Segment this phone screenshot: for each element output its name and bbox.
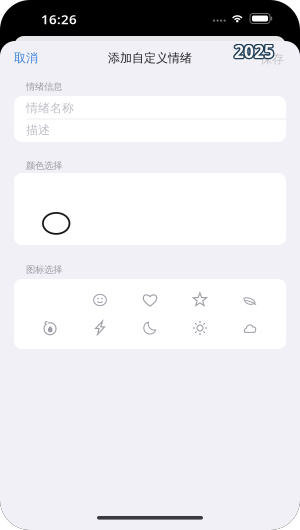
staticText: 情绪名称 (26, 101, 74, 115)
staticText: 2025 (234, 41, 274, 64)
button[interactable]: 闪电 (85, 315, 115, 341)
staticText: 2025 (233, 41, 273, 64)
staticText: 2025 (234, 38, 274, 61)
staticText: 2025 (233, 40, 273, 63)
button[interactable]: 笑脸 (85, 287, 115, 313)
staticText: 16:26 (41, 10, 77, 28)
staticText: 2025 (235, 41, 275, 64)
staticText: 取消 (14, 51, 38, 65)
button[interactable]: 叶子 (235, 287, 265, 313)
button[interactable]: 情绪名称 (14, 98, 286, 119)
staticText: 2025 (233, 39, 273, 62)
staticText: 颜色选择 (26, 160, 62, 171)
staticText: 情绪信息 (26, 81, 62, 92)
button[interactable]: 保存 (244, 46, 284, 72)
staticText: 2025 (234, 40, 274, 63)
staticText: 添加自定义情绪 (108, 51, 192, 65)
button[interactable]: 爱心 (135, 287, 165, 313)
staticText: 保存 (260, 52, 284, 66)
button[interactable]: 云朵 (235, 315, 265, 341)
button[interactable]: 取消 (14, 45, 58, 71)
button[interactable]: 月亮 (135, 315, 165, 341)
button[interactable]: 选择颜色 (42, 212, 71, 235)
button[interactable]: 火焰 (35, 315, 65, 341)
button[interactable]: 描述 (14, 119, 286, 140)
staticText: 2025 (235, 40, 275, 63)
button[interactable]: 太阳 (185, 315, 215, 341)
staticText: 描述 (26, 122, 50, 137)
button[interactable]: 星星 (185, 287, 215, 313)
staticText: 图标选择 (26, 264, 62, 275)
staticText: 2025 (235, 39, 275, 62)
